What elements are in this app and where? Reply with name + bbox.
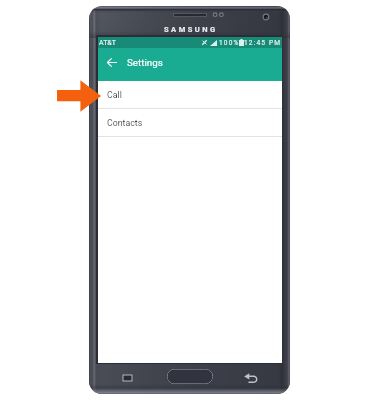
staticText: Contacts (107, 118, 143, 128)
button[interactable]: Recent apps (118, 369, 137, 387)
button[interactable]: Home (167, 369, 213, 384)
staticText: AT&T (99, 39, 116, 47)
staticText: 100% (219, 39, 240, 47)
staticText: Settings (127, 57, 163, 68)
staticText: Call (107, 90, 122, 100)
button[interactable]: Navigate up (102, 52, 121, 72)
button[interactable]: Contacts (98, 109, 282, 137)
button[interactable]: Back (241, 368, 261, 387)
staticText: 12:45 PM (244, 39, 282, 47)
staticText: SAMSUNG (164, 25, 218, 34)
button[interactable]: Call (98, 81, 282, 109)
